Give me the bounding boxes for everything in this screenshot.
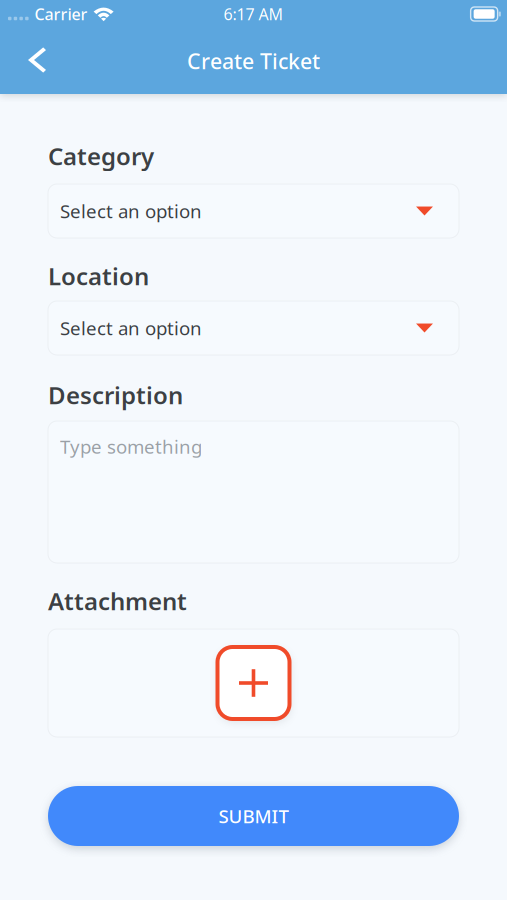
- staticText: Select an option: [60, 199, 202, 223]
- staticText: SUBMIT: [218, 804, 288, 828]
- staticText: Category: [48, 140, 154, 172]
- button[interactable]: Select an option: [48, 184, 459, 238]
- staticText: Carrier: [35, 3, 88, 25]
- staticText: Create Ticket: [187, 47, 320, 75]
- staticText: Location: [48, 260, 149, 292]
- staticText: Attachment: [48, 585, 187, 617]
- button[interactable]: SUBMIT: [48, 786, 459, 846]
- button[interactable]: Back: [10, 35, 64, 85]
- button[interactable]: Add attachment: [212, 642, 294, 724]
- staticText: Type something: [60, 434, 202, 459]
- staticText: 6:17 AM: [223, 3, 283, 25]
- staticText: Description: [48, 379, 183, 411]
- button[interactable]: Select an option: [48, 301, 459, 355]
- staticText: Select an option: [60, 316, 202, 340]
